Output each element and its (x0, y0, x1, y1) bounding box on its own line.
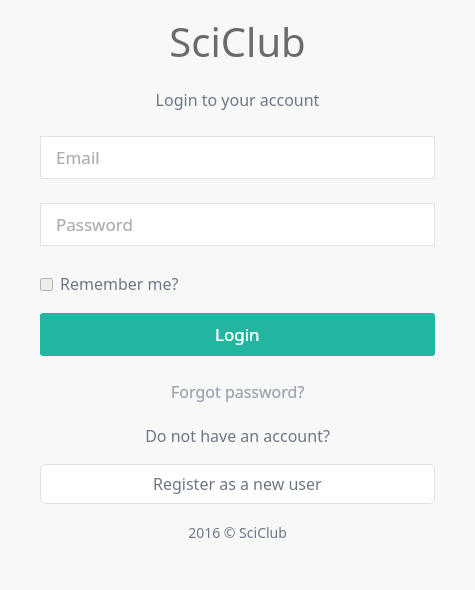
button[interactable]: Email (40, 136, 435, 179)
staticText: Register as a new user (153, 473, 322, 495)
staticText: Do not have an account? (0, 425, 475, 447)
button[interactable]: Remember me? (40, 271, 179, 297)
staticText: SciClub (0, 14, 475, 68)
staticText: Remember me? (60, 273, 179, 295)
staticText: Login (215, 323, 260, 346)
staticText: Password (56, 213, 133, 236)
staticText: Forgot password? (171, 381, 305, 403)
button[interactable]: Password (40, 203, 435, 246)
button[interactable]: Forgot password? (165, 379, 311, 405)
button[interactable]: Login (40, 313, 435, 356)
staticText: Login to your account (0, 89, 475, 111)
staticText: 2016 © SciClub (0, 523, 475, 542)
button[interactable]: Register as a new user (40, 464, 435, 504)
staticText: Email (56, 146, 100, 169)
